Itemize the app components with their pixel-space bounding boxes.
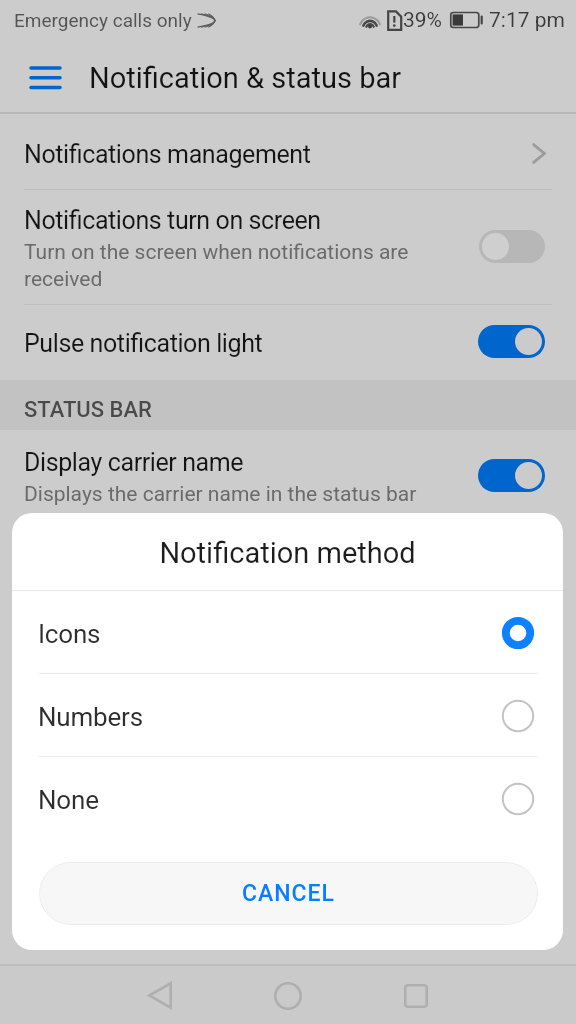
staticText: Notifications turn on screen <box>24 206 321 235</box>
staticText: STATUS BAR <box>24 397 152 423</box>
staticText: Notification method <box>159 536 416 570</box>
staticText: CANCEL <box>242 880 336 907</box>
button[interactable]: Home <box>259 967 316 1024</box>
staticText: Icons <box>38 619 101 649</box>
button[interactable]: CANCEL <box>39 862 538 925</box>
button[interactable]: Navigation menu <box>23 57 67 101</box>
button[interactable]: Back <box>131 967 188 1024</box>
staticText: 7:17 pm <box>489 8 565 33</box>
button[interactable]: Notifications turn on screen <box>0 190 576 304</box>
staticText: Notification & status bar <box>89 61 402 95</box>
staticText: Display carrier name <box>24 448 244 477</box>
button[interactable]: Icons <box>12 591 563 673</box>
staticText: Notifications management <box>24 140 311 169</box>
staticText: 39% <box>403 8 442 33</box>
button[interactable]: Display carrier name <box>0 430 576 540</box>
staticText: Turn on the screen when notifications ar… <box>24 240 414 291</box>
button[interactable]: Recent apps <box>387 967 444 1024</box>
staticText: Pulse notification light <box>24 329 263 358</box>
staticText: Numbers <box>38 702 143 732</box>
button[interactable]: Numbers <box>12 674 563 756</box>
staticText: Emergency calls only <box>14 9 192 31</box>
button[interactable]: None <box>12 757 563 839</box>
staticText: Displays the carrier name in the status … <box>24 482 417 507</box>
button[interactable]: Notifications management <box>0 114 576 189</box>
button[interactable]: Pulse notification light <box>0 305 576 380</box>
staticText: None <box>38 785 99 815</box>
